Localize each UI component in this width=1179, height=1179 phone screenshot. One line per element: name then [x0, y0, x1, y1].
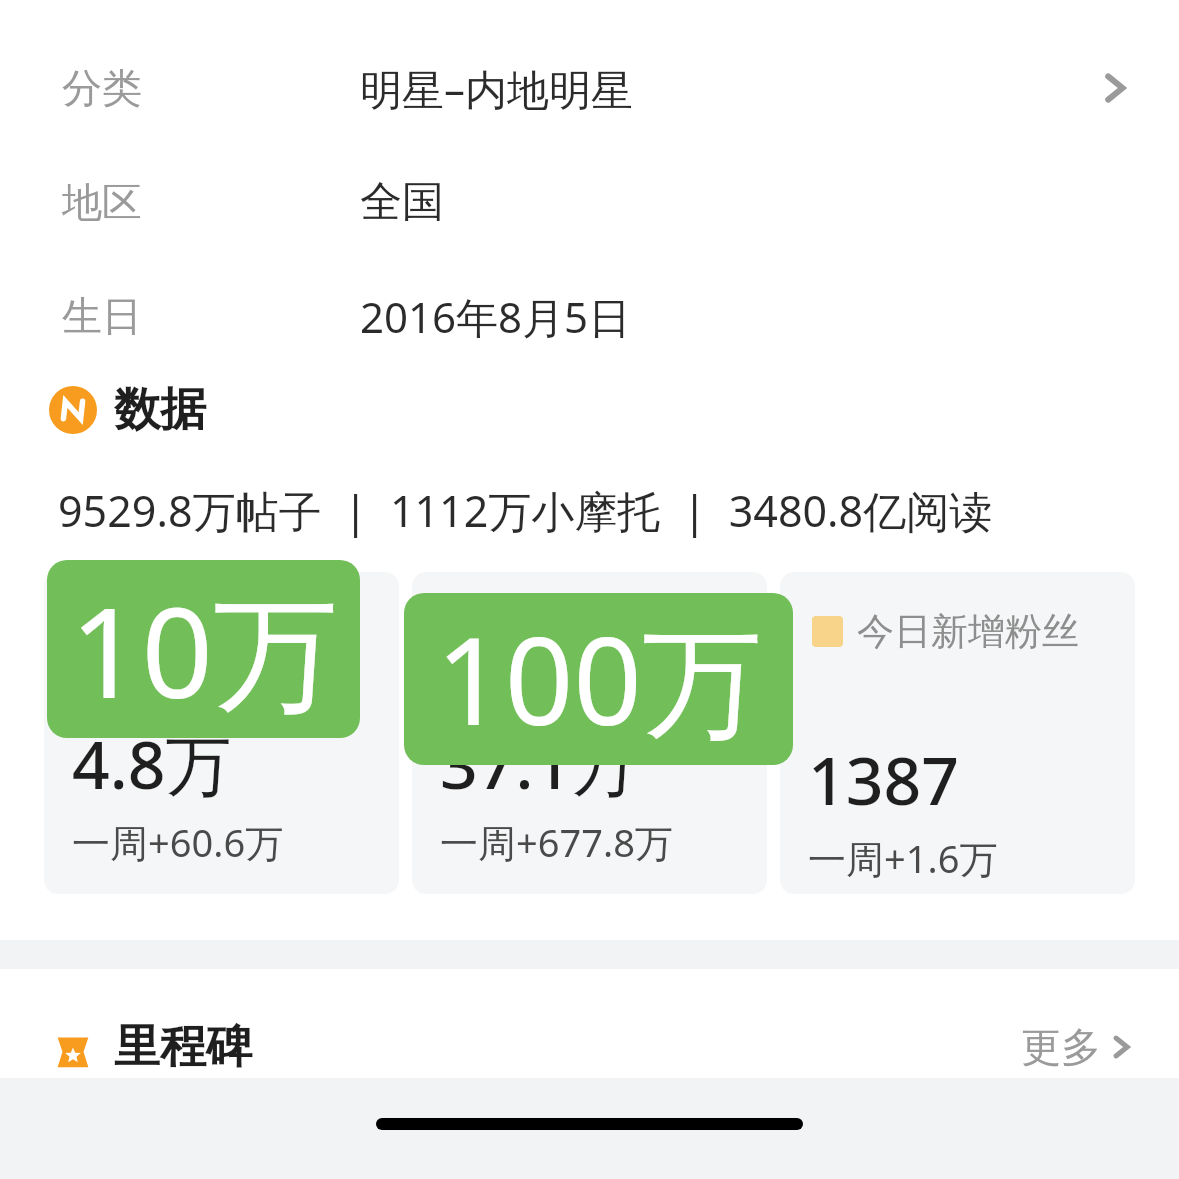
button[interactable]: 4.8万: [44, 572, 399, 894]
staticText: 分类: [62, 63, 142, 113]
staticText: 一周+1.6万: [808, 832, 998, 884]
staticText: 2016年8月5日: [360, 288, 631, 345]
button[interactable]: 生日: [0, 259, 1179, 373]
button[interactable]: 9529.8万帖子 | 1112万小摩托 | 3480.8亿阅读: [0, 481, 1179, 540]
button[interactable]: 数据: [0, 373, 1179, 447]
staticText: 今日新增粉丝: [857, 608, 1079, 655]
button[interactable]: 地区: [0, 145, 1179, 259]
staticText: 1387: [808, 734, 960, 824]
staticText: 4.8万: [72, 718, 232, 808]
staticText: 10万: [70, 564, 338, 735]
staticText: 37.1万: [440, 718, 638, 808]
staticText: 一周+677.8万: [440, 816, 673, 868]
button[interactable]: 今日新增粉丝: [780, 572, 1135, 894]
other: More: [1075, 48, 1155, 128]
staticText: 数据: [114, 381, 206, 439]
staticText: 地区: [62, 177, 142, 227]
button[interactable]: 更多: [1021, 1022, 1179, 1072]
staticText: 9529.8万帖子 | 1112万小摩托 | 3480.8亿阅读: [58, 481, 993, 540]
button[interactable]: 里程碑: [0, 1007, 1179, 1087]
staticText: 一周+60.6万: [72, 816, 284, 868]
button[interactable]: 分类: [0, 31, 1179, 145]
button[interactable]: 37.1万: [412, 572, 767, 894]
staticText: 生日: [62, 291, 142, 341]
staticText: 更多: [1021, 1022, 1101, 1072]
staticText: 100万: [436, 597, 762, 761]
staticText: 明星–内地明星: [360, 60, 634, 117]
staticText: 里程碑: [114, 1018, 252, 1076]
staticText: 全国: [360, 176, 444, 229]
